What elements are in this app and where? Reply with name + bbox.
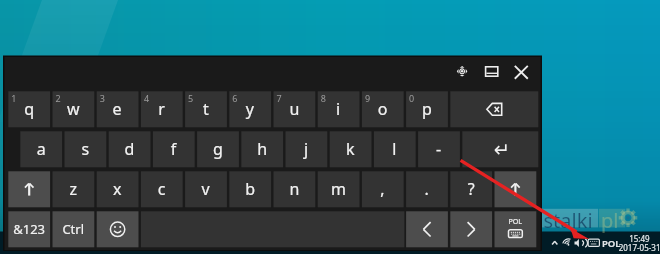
other: Windows touch keyboard <box>0 0 660 254</box>
